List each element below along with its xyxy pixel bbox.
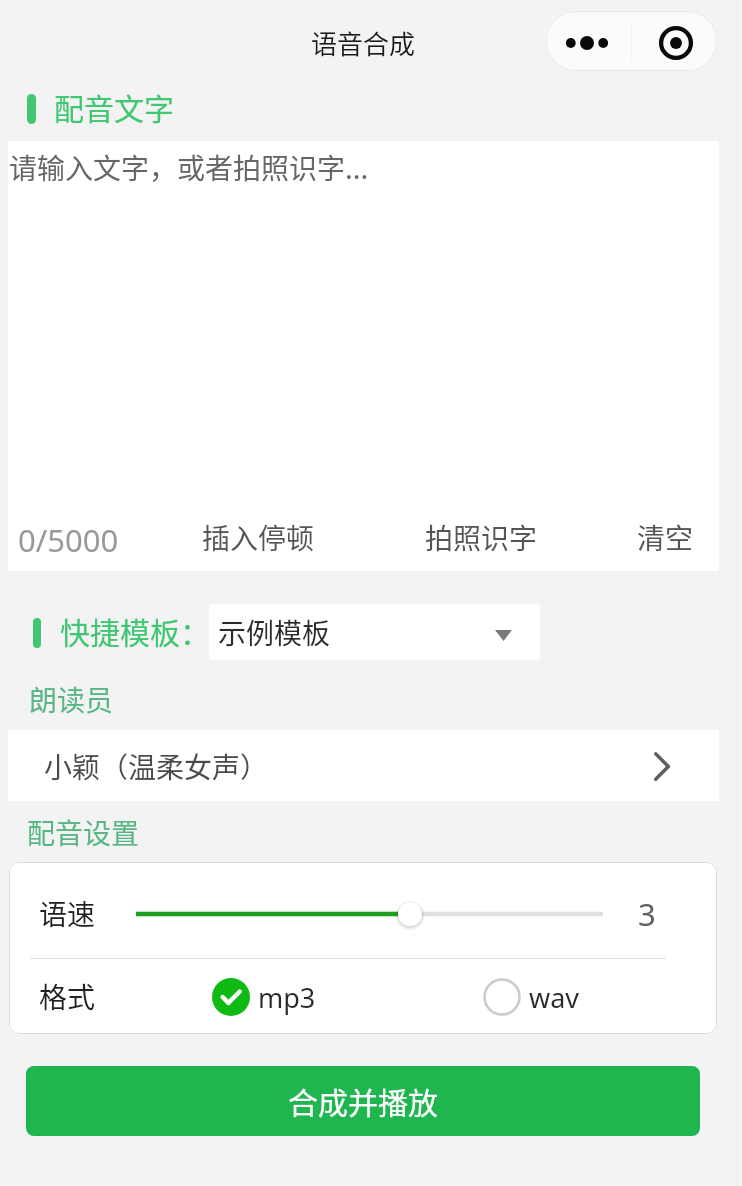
staticText: 3 <box>638 893 656 935</box>
button[interactable]: Close mini program <box>632 11 717 71</box>
button[interactable]: mp3 <box>212 978 316 1017</box>
staticText: 配音设置 <box>27 812 140 853</box>
staticText: 示例模板 <box>218 612 331 653</box>
staticText: 语速 <box>39 893 96 934</box>
staticText: wav <box>529 979 580 1016</box>
button[interactable]: More options <box>546 11 631 71</box>
staticText: 格式 <box>39 976 96 1017</box>
staticText: 0/5000 <box>18 519 119 561</box>
button[interactable]: 小颖（温柔女声） <box>8 730 719 801</box>
button[interactable]: 合成并播放 <box>26 1066 700 1136</box>
button[interactable]: 拍照识字 <box>425 517 538 558</box>
staticText: 配音文字 <box>54 85 174 128</box>
staticText: 小颖（温柔女声） <box>44 746 269 787</box>
button[interactable]: 清空 <box>637 517 694 558</box>
button[interactable]: 插入停顿 <box>202 517 315 558</box>
button[interactable]: 示例模板 <box>209 604 540 660</box>
staticText: 请输入文字，或者拍照识字... <box>9 147 369 188</box>
staticText: 合成并播放 <box>288 1079 438 1122</box>
staticText: mp3 <box>258 979 316 1016</box>
staticText: 快捷模板： <box>60 609 210 652</box>
staticText: 语音合成 <box>311 24 416 62</box>
button[interactable]: wav <box>483 978 580 1017</box>
staticText: 朗读员 <box>29 679 114 720</box>
